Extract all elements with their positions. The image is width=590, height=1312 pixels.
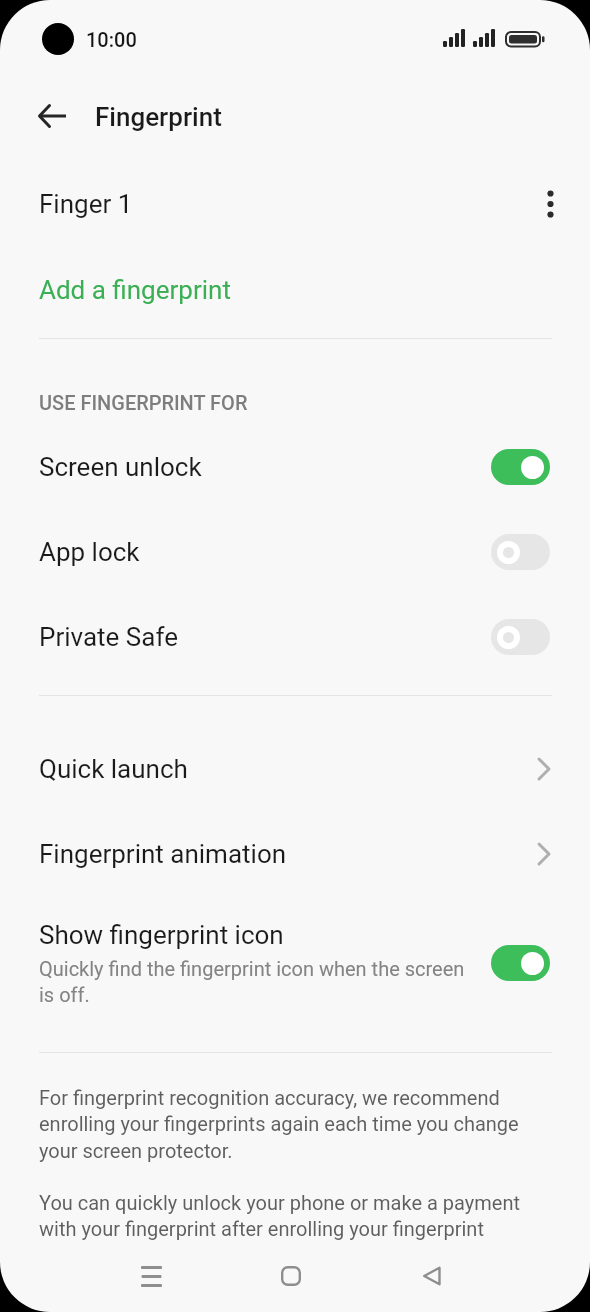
button[interactable] xyxy=(491,534,550,570)
button[interactable]: Show fingerprint icon xyxy=(0,912,590,1014)
button[interactable]: Add a fingerprint xyxy=(0,260,590,320)
staticText: Screen unlock xyxy=(39,452,202,482)
staticText: Quickly find the fingerprint icon when t… xyxy=(39,957,465,1006)
button[interactable]: Quick launch xyxy=(0,739,590,799)
staticText: App lock xyxy=(39,537,140,567)
staticText: Quick launch xyxy=(39,754,188,784)
staticText: Show fingerprint icon xyxy=(39,920,284,950)
button[interactable] xyxy=(491,945,550,981)
button[interactable] xyxy=(408,1252,456,1300)
staticText: For fingerprint recognition accuracy, we… xyxy=(39,1086,519,1163)
staticText: You can quickly unlock your phone or mak… xyxy=(39,1191,520,1241)
button[interactable]: Finger 1 xyxy=(0,174,590,234)
button[interactable]: Fingerprint animation xyxy=(0,824,590,884)
staticText: Fingerprint xyxy=(95,102,222,132)
staticText: Private Safe xyxy=(39,622,178,652)
button[interactable] xyxy=(491,619,550,655)
staticText: Finger 1 xyxy=(39,189,133,219)
button[interactable] xyxy=(127,1252,175,1300)
button[interactable]: App lock xyxy=(0,522,590,582)
staticText: 10:00 xyxy=(86,28,137,51)
button[interactable] xyxy=(26,96,78,136)
button[interactable] xyxy=(267,1252,315,1300)
button[interactable] xyxy=(491,449,550,485)
staticText: Fingerprint animation xyxy=(39,839,287,869)
button[interactable]: Private Safe xyxy=(0,607,590,667)
staticText: Add a fingerprint xyxy=(39,275,231,305)
button[interactable]: Screen unlock xyxy=(0,437,590,497)
staticText: USE FINGERPRINT FOR xyxy=(39,391,248,414)
